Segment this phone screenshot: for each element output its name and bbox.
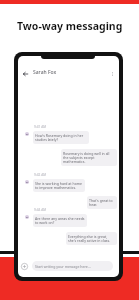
button[interactable]: How's Rosemary doing in her studies late… <box>33 131 89 144</box>
staticText: SF <box>26 216 29 219</box>
staticText: Start writing your message here... <box>35 264 91 269</box>
button[interactable]: Back <box>21 69 30 78</box>
staticText: That's great to hear. <box>89 198 115 207</box>
staticText: She is working hard at home to improve m… <box>35 181 83 190</box>
staticText: Rosemary is doing well in all the subjec… <box>63 151 115 164</box>
button[interactable]: Add attachment <box>21 263 28 270</box>
staticText: Sarah Fox <box>33 69 57 76</box>
button[interactable]: That's great to hear. <box>87 196 117 209</box>
button[interactable]: Are there any areas she needs to work on… <box>33 214 87 227</box>
staticText: 9:42 AM <box>34 173 47 177</box>
button[interactable]: Rosemary is doing well in all the subjec… <box>61 149 117 166</box>
button[interactable]: Start writing your message here... <box>32 261 113 271</box>
button[interactable] <box>18 56 119 78</box>
button[interactable]: Everything else is great, she's really a… <box>66 232 117 245</box>
staticText: 9:41 AM <box>34 125 47 129</box>
button[interactable]: More options <box>108 69 117 78</box>
staticText: Two-way messaging <box>17 19 123 33</box>
staticText: 9:44 AM <box>34 208 47 212</box>
staticText: How's Rosemary doing in her studies late… <box>35 133 87 142</box>
button[interactable]: She is working hard at home to improve m… <box>33 179 85 192</box>
staticText: Are there any areas she needs to work on… <box>35 216 85 225</box>
staticText: SF <box>26 181 29 184</box>
staticText: SF <box>26 133 29 136</box>
staticText: Everything else is great, she's really a… <box>68 234 115 243</box>
